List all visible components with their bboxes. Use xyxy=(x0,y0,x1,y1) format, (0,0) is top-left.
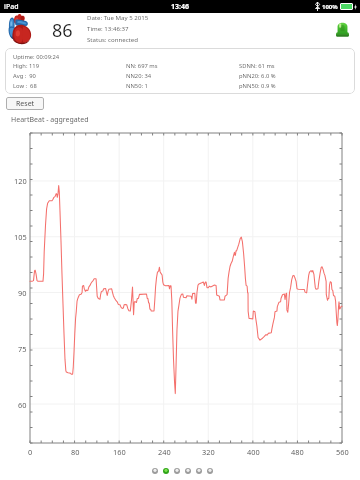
staticText: Time: 13:46:37 xyxy=(87,24,129,32)
staticText: 560 xyxy=(336,447,349,457)
staticText: SDNN: 61 ms xyxy=(239,62,275,70)
staticText: 80 xyxy=(71,447,80,457)
button[interactable]: Page 1 xyxy=(150,466,160,476)
staticText: Uptime: 00:09:24 xyxy=(13,53,60,61)
staticText: 90 xyxy=(18,288,27,298)
staticText: 105 xyxy=(14,232,27,242)
staticText: 240 xyxy=(158,447,171,457)
staticText: 13:46 xyxy=(171,2,189,12)
staticText: Reset xyxy=(16,99,35,109)
button[interactable]: Page 2 xyxy=(161,466,171,476)
button[interactable]: Page 4 xyxy=(183,466,193,476)
staticText: NN20: 34 xyxy=(126,72,152,80)
staticText: 86 xyxy=(52,18,73,43)
staticText: 320 xyxy=(202,447,215,457)
button[interactable]: Page 3 xyxy=(172,466,182,476)
staticText: HeartBeat - aggregated xyxy=(11,115,89,125)
button[interactable]: Reset xyxy=(6,97,44,110)
staticText: High: 119 xyxy=(13,62,39,70)
staticText: pNN20: 6.0 % xyxy=(239,72,276,80)
staticText: 160 xyxy=(113,447,126,457)
staticText: 75 xyxy=(18,344,27,354)
button[interactable]: Page 6 xyxy=(205,466,215,476)
staticText: 480 xyxy=(291,447,304,457)
button[interactable]: Page 5 xyxy=(194,466,204,476)
staticText: pNN50: 0.9 % xyxy=(239,82,276,90)
staticText: 0 xyxy=(28,447,33,457)
staticText: Date: Tue May 5 2015 xyxy=(87,13,149,21)
staticText: NN50: 1 xyxy=(126,82,148,90)
staticText: 60 xyxy=(18,400,27,410)
staticText: Avg : 90 xyxy=(13,72,36,80)
staticText: iPad xyxy=(4,2,19,12)
staticText: 400 xyxy=(247,447,260,457)
staticText: Status: connected xyxy=(87,35,138,43)
staticText: Low : 68 xyxy=(13,82,37,90)
staticText: 120 xyxy=(14,176,27,186)
staticText: 100% xyxy=(322,3,338,11)
staticText: NN: 697 ms xyxy=(126,62,158,70)
